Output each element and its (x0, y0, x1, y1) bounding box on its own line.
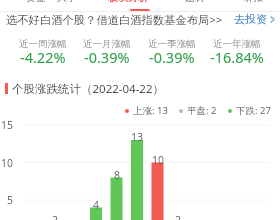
staticText: -0.39% (84, 47, 130, 67)
staticText: 近一年涨幅 (213, 38, 261, 50)
staticText: -0.39% (149, 47, 195, 67)
staticText: 5 (7, 193, 14, 207)
button[interactable]: 选不好白酒个股？借道白酒指数基金布局>> (0, 12, 280, 26)
staticText: 题材 (185, 0, 205, 4)
button[interactable]: 板块分析 (108, 0, 148, 4)
staticText: 资金 (26, 0, 46, 4)
staticText: 近一季涨幅 (148, 38, 196, 50)
staticText: 8 (114, 168, 121, 182)
staticText: 上涨: 13 (133, 104, 168, 117)
staticText: 研报 (243, 0, 263, 4)
button[interactable]: 近一周涨幅 (11, 38, 75, 70)
staticText: 4 (93, 198, 100, 212)
button[interactable]: 大事 (57, 0, 77, 4)
staticText: 个股涨跌统计（2022-04-22） (12, 81, 165, 95)
button[interactable]: 近一月涨幅 (75, 38, 139, 70)
staticText: 10 (152, 153, 165, 167)
staticText: 去投资 (234, 12, 267, 26)
staticText: 2 (52, 213, 59, 220)
staticText: 15 (1, 118, 14, 132)
button[interactable]: 题材 (185, 0, 205, 4)
staticText: 近一周涨幅 (19, 38, 67, 50)
staticText: 下跌: 27 (236, 104, 271, 117)
staticText: 近一月涨幅 (83, 38, 131, 50)
staticText: -16.84% (210, 47, 264, 67)
button[interactable]: 近一季涨幅 (139, 38, 204, 70)
staticText: 平盘: 2 (187, 104, 217, 117)
button[interactable]: 去投资 (234, 12, 275, 26)
staticText: 选不好白酒个股？借道白酒指数基金布局>> (6, 12, 223, 26)
staticText: -4.22% (20, 47, 66, 67)
staticText: 大事 (57, 0, 77, 4)
staticText: 板块分析 (108, 0, 148, 4)
button[interactable]: 近一年涨幅 (204, 38, 269, 70)
button[interactable]: 资金 (26, 0, 46, 4)
staticText: 10 (1, 156, 14, 170)
staticText: 2 (175, 213, 182, 220)
staticText: 13 (131, 130, 144, 144)
button[interactable]: 研报 (243, 0, 263, 4)
